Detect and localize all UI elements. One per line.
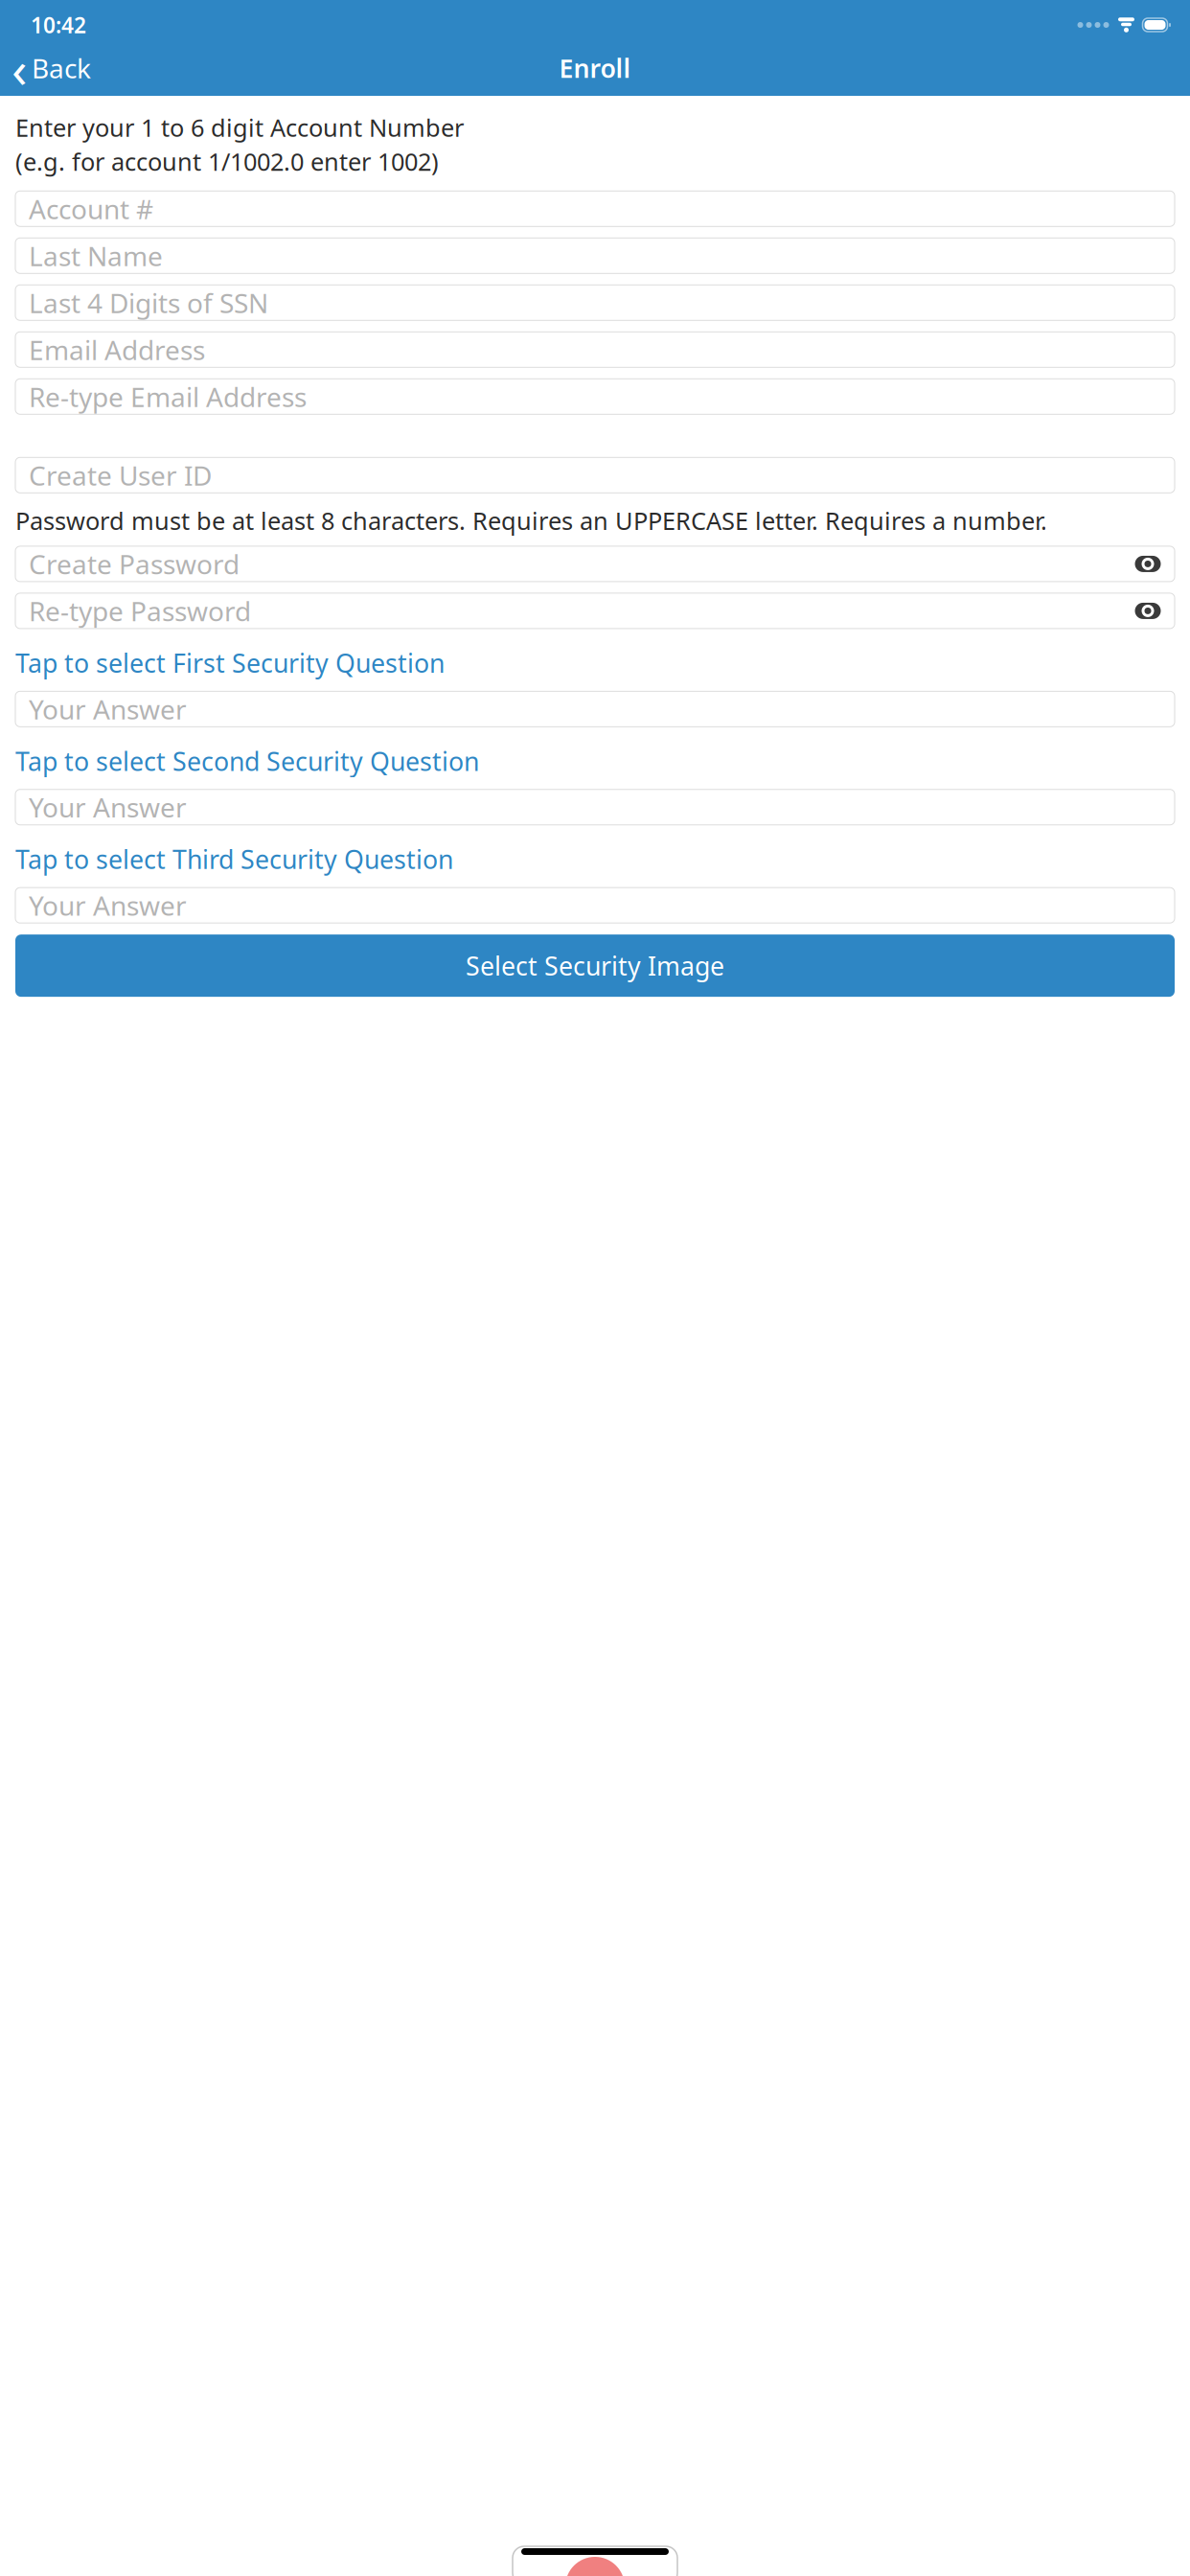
staticText: 10:42 xyxy=(31,10,86,39)
button[interactable]: ‹ xyxy=(0,47,101,89)
staticText: Email Address xyxy=(29,332,205,367)
button[interactable]: Your Answer xyxy=(15,888,1175,923)
staticText: Last Name xyxy=(29,238,163,274)
button[interactable]: Your Answer xyxy=(15,789,1175,825)
button[interactable]: Create User ID xyxy=(15,457,1175,493)
staticText: Enter your 1 to 6 digit Account Number xyxy=(15,111,464,143)
staticText: Password must be at least 8 characters. … xyxy=(15,504,1047,537)
button[interactable]: Last Name xyxy=(15,238,1175,273)
staticText: Last 4 Digits of SSN xyxy=(29,285,268,320)
staticText: Tap to select Second Security Question xyxy=(15,744,479,778)
staticText: Back xyxy=(32,50,91,86)
staticText: Create User ID xyxy=(29,457,212,493)
staticText: Your Answer xyxy=(29,691,187,727)
button[interactable]: Tap to select Third Security Question xyxy=(15,842,1175,876)
staticText: Re-type Email Address xyxy=(29,379,307,414)
staticText: Re-type Password xyxy=(29,593,251,629)
button[interactable]: Tap to select Second Security Question xyxy=(15,744,1175,778)
button[interactable]: Account # xyxy=(15,191,1175,226)
staticText: Tap to select First Security Question xyxy=(15,646,445,680)
button[interactable]: Tap to select First Security Question xyxy=(15,646,1175,680)
button[interactable]: Select Security Image xyxy=(15,935,1175,997)
button[interactable]: Last 4 Digits of SSN xyxy=(15,285,1175,320)
staticText: Your Answer xyxy=(29,888,187,923)
button[interactable]: Re-type Email Address xyxy=(15,379,1175,414)
staticText: Tap to select Third Security Question xyxy=(15,842,453,876)
staticText: ‹ xyxy=(11,34,28,102)
staticText: Enroll xyxy=(559,51,631,85)
staticText: Your Answer xyxy=(29,789,187,825)
button[interactable]: Your Answer xyxy=(15,691,1175,727)
button[interactable]: Re-type Password xyxy=(15,593,1175,629)
staticText: Select Security Image xyxy=(466,949,724,983)
staticText: Create Password xyxy=(29,546,240,582)
button[interactable]: Create Password xyxy=(15,546,1175,582)
staticText: (e.g. for account 1/1002.0 enter 1002) xyxy=(15,145,439,177)
button[interactable]: Email Address xyxy=(15,332,1175,367)
staticText: Account # xyxy=(29,191,153,227)
